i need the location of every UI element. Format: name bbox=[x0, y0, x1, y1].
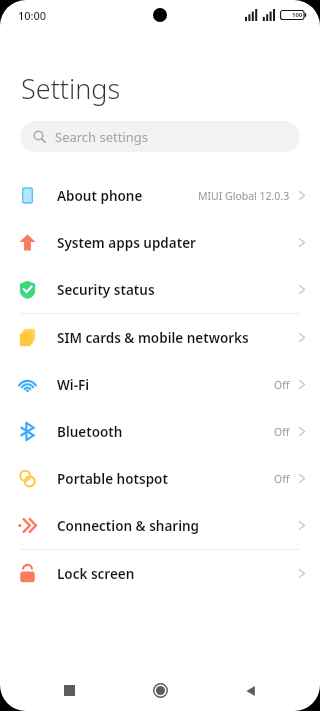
staticText: Settings bbox=[21, 70, 121, 107]
staticText: MIUI Global 12.0.3 bbox=[198, 189, 290, 203]
staticText: Off bbox=[274, 472, 290, 486]
staticText: Portable hotspot bbox=[57, 470, 168, 488]
staticText: Bluetooth bbox=[57, 423, 123, 441]
staticText: Security status bbox=[57, 281, 155, 299]
staticText: 10:00 bbox=[18, 8, 47, 23]
staticText: Off bbox=[274, 425, 290, 439]
button[interactable]: Search settings bbox=[20, 121, 300, 152]
button[interactable]: Portable hotspot bbox=[0, 455, 320, 502]
staticText: About phone bbox=[57, 187, 143, 205]
button[interactable]: Bluetooth bbox=[0, 408, 320, 455]
button[interactable]: Lock screen bbox=[0, 550, 320, 597]
staticText: SIM cards & mobile networks bbox=[57, 329, 249, 347]
staticText: Lock screen bbox=[57, 565, 135, 583]
staticText: System apps updater bbox=[57, 234, 196, 252]
staticText: Search settings bbox=[55, 128, 149, 146]
button[interactable]: Recents bbox=[47, 670, 91, 711]
button[interactable]: System apps updater bbox=[0, 219, 320, 266]
button[interactable]: Connection & sharing bbox=[0, 502, 320, 549]
button[interactable]: Security status bbox=[0, 266, 320, 313]
staticText: Wi-Fi bbox=[57, 376, 90, 394]
button[interactable]: Home bbox=[138, 670, 182, 711]
button[interactable]: Wi-Fi bbox=[0, 361, 320, 408]
staticText: 100 bbox=[292, 11, 303, 19]
staticText: Connection & sharing bbox=[57, 517, 200, 535]
button[interactable]: Back bbox=[229, 670, 273, 711]
button[interactable]: SIM cards & mobile networks bbox=[0, 314, 320, 361]
button[interactable]: About phone bbox=[0, 172, 320, 219]
staticText: Off bbox=[274, 378, 290, 392]
